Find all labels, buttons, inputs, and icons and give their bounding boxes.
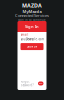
staticText: Next bbox=[39, 83, 43, 84]
staticText: Email bbox=[20, 33, 28, 36]
staticText: MyMazda bbox=[22, 9, 41, 14]
staticText: MAZDA bbox=[22, 2, 42, 9]
staticText: Sign in to continue bbox=[18, 18, 46, 22]
staticText: you@example.com bbox=[20, 37, 43, 41]
button[interactable]: Next bbox=[38, 81, 43, 85]
button[interactable]: SIGN IN bbox=[20, 43, 43, 50]
staticText: Forgot password? bbox=[20, 80, 33, 87]
staticText: SIGN IN bbox=[27, 45, 37, 48]
staticText: Sign In bbox=[25, 24, 39, 29]
staticText: Connected Services bbox=[15, 13, 49, 18]
